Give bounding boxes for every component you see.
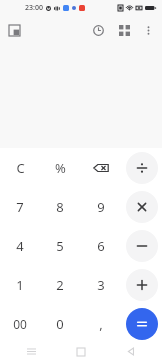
button[interactable]: Operator xyxy=(121,187,162,226)
button[interactable]: Operator xyxy=(121,148,162,187)
button[interactable]: Floating window xyxy=(4,20,24,40)
button[interactable]: 9 xyxy=(80,187,121,226)
staticText: % xyxy=(55,159,66,177)
button[interactable]: 0 xyxy=(40,304,80,343)
button[interactable]: Delete xyxy=(80,148,121,187)
button[interactable]: 3 xyxy=(80,265,121,304)
staticText: 8 xyxy=(56,198,64,216)
button[interactable]: 2 xyxy=(40,265,80,304)
button[interactable]: 7 xyxy=(0,187,40,226)
button[interactable]: Home xyxy=(72,343,90,360)
button[interactable]: 6 xyxy=(80,226,121,265)
button[interactable]: Unit converter xyxy=(114,20,134,40)
staticText: 23:00 xyxy=(25,3,43,13)
button[interactable]: More options xyxy=(138,20,158,40)
button[interactable]: Back xyxy=(122,343,140,360)
staticText: 00 xyxy=(13,316,27,332)
button[interactable]: 5 xyxy=(40,226,80,265)
staticText: 4 xyxy=(16,237,24,255)
staticText: 5 xyxy=(56,237,64,255)
button[interactable]: 1 xyxy=(0,265,40,304)
button[interactable]: , xyxy=(80,304,121,343)
button[interactable]: Operator xyxy=(121,265,162,304)
button[interactable]: Recents xyxy=(22,343,40,360)
button[interactable]: 00 xyxy=(0,304,40,343)
button[interactable]: Equals xyxy=(121,304,162,343)
staticText: 2 xyxy=(56,276,64,294)
staticText: 9 xyxy=(97,198,105,216)
button[interactable]: C xyxy=(0,148,40,187)
staticText: 6 xyxy=(97,237,105,255)
button[interactable]: 8 xyxy=(40,187,80,226)
button[interactable]: Operator xyxy=(121,226,162,265)
staticText: C xyxy=(16,159,25,177)
staticText: 3 xyxy=(97,276,105,294)
button[interactable]: % xyxy=(40,148,80,187)
staticText: , xyxy=(99,315,103,333)
staticText: 0 xyxy=(56,315,64,333)
button[interactable]: 4 xyxy=(0,226,40,265)
button[interactable]: History xyxy=(88,20,108,40)
staticText: 7 xyxy=(16,198,24,216)
staticText: 1 xyxy=(16,276,24,294)
